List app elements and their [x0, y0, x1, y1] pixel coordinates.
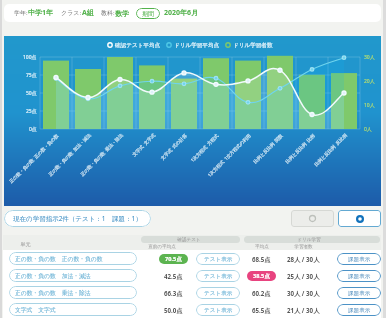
- staticText: 課題表示: [348, 290, 371, 297]
- staticText: ドリル学習: [297, 237, 321, 243]
- staticText: A組: [82, 8, 94, 18]
- button[interactable]: 課題表示: [337, 304, 381, 316]
- staticText: テスト表示: [204, 290, 233, 297]
- staticText: 学年:: [14, 9, 28, 17]
- staticText: 中学1年: [28, 8, 54, 18]
- button[interactable]: テスト表示: [196, 287, 240, 299]
- button[interactable]: テスト表示: [196, 304, 240, 316]
- staticText: 28人 / 30人: [287, 255, 320, 263]
- staticText: 正の数・負の数 正の数・負の数: [15, 255, 103, 263]
- staticText: 42.5点: [164, 272, 183, 280]
- staticText: 25人 / 30人: [287, 272, 320, 280]
- button[interactable]: 期間: [136, 8, 160, 19]
- staticText: 単元: [20, 241, 31, 248]
- button[interactable]: テスト表示: [196, 253, 240, 265]
- staticText: 課題表示: [348, 273, 371, 280]
- staticText: 直前の平均点: [148, 244, 176, 250]
- button[interactable]: List view: [291, 210, 334, 227]
- staticText: 教科:: [101, 9, 115, 17]
- button[interactable]: 現在の学習指示2件（テスト：1 課題：1）: [4, 210, 151, 227]
- button[interactable]: 正の数・負の数 加法・減法: [3, 267, 381, 284]
- staticText: テスト表示: [204, 256, 233, 263]
- staticText: 2020年6月: [164, 8, 199, 18]
- button[interactable]: テスト表示: [196, 270, 240, 282]
- staticText: 68.5点: [252, 255, 271, 263]
- staticText: テスト表示: [204, 307, 233, 314]
- staticText: 現在の学習指示2件（テスト：1 課題：1）: [13, 214, 142, 223]
- staticText: 66.3点: [164, 289, 183, 297]
- staticText: 文字式 文字式: [15, 306, 56, 314]
- staticText: 30人 / 30人: [287, 289, 320, 297]
- staticText: 正の数・負の数 乗法・除法: [15, 289, 91, 297]
- staticText: 60.2点: [252, 289, 271, 297]
- staticText: 正の数・負の数 加法・減法: [15, 272, 91, 280]
- staticText: 21人 / 30人: [287, 306, 320, 314]
- button[interactable]: 正の数・負の数 正の数・負の数: [3, 250, 381, 267]
- staticText: 38.5点: [253, 272, 270, 280]
- staticText: 65.5点: [252, 306, 271, 314]
- staticText: 確認テスト: [177, 237, 201, 243]
- button[interactable]: 課題表示: [337, 287, 381, 299]
- staticText: クラス:: [61, 9, 82, 17]
- staticText: テスト表示: [204, 273, 233, 280]
- button[interactable]: 課題表示: [337, 253, 381, 265]
- staticText: 課題表示: [348, 307, 371, 314]
- button[interactable]: 課題表示: [337, 270, 381, 282]
- button[interactable]: 文字式 文字式: [3, 301, 381, 318]
- staticText: 平均点: [255, 244, 269, 250]
- staticText: 期間: [142, 10, 154, 18]
- button[interactable]: Chart view: [338, 210, 381, 227]
- staticText: 学習者数: [294, 244, 313, 250]
- staticText: 課題表示: [348, 256, 371, 263]
- staticText: 数学: [115, 9, 129, 18]
- staticText: 70.5点: [165, 255, 182, 263]
- staticText: 50.0点: [164, 306, 183, 314]
- button[interactable]: 正の数・負の数 乗法・除法: [3, 284, 381, 301]
